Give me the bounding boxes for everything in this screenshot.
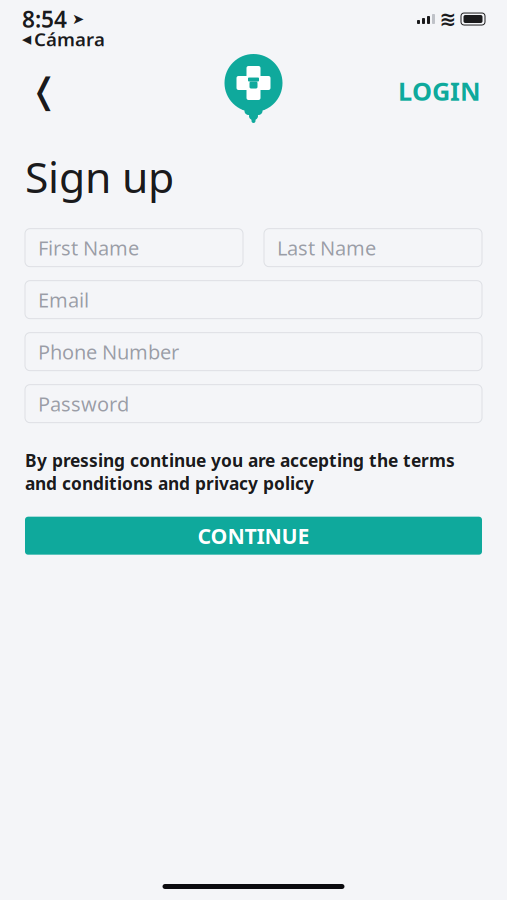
staticText: By pressing continue you are accepting t… bbox=[25, 449, 455, 495]
staticText: ❬ bbox=[29, 71, 58, 111]
button[interactable]: First Name bbox=[25, 229, 243, 267]
staticText: ➤ bbox=[72, 11, 84, 27]
button[interactable]: Back bbox=[22, 69, 66, 113]
button[interactable]: Phone Number bbox=[25, 333, 482, 371]
staticText: 8:54 bbox=[22, 4, 67, 34]
staticText: CONTINUE bbox=[197, 521, 309, 550]
staticText: Password bbox=[38, 390, 129, 417]
button[interactable]: Email bbox=[25, 281, 482, 319]
staticText: ◀ bbox=[22, 32, 31, 46]
button[interactable]: Password bbox=[25, 385, 482, 423]
staticText: ≋ bbox=[439, 8, 456, 30]
button[interactable]: CONTINUE bbox=[25, 517, 482, 555]
button[interactable]: LOGIN bbox=[394, 69, 485, 113]
staticText: LOGIN bbox=[398, 74, 481, 108]
staticText: Last Name bbox=[277, 234, 376, 261]
staticText: Email bbox=[38, 286, 89, 313]
staticText: First Name bbox=[38, 234, 139, 261]
staticText: Cámara bbox=[34, 27, 105, 51]
button[interactable]: Last Name bbox=[264, 229, 482, 267]
staticText: Phone Number bbox=[38, 338, 179, 365]
staticText: Sign up bbox=[25, 148, 174, 205]
